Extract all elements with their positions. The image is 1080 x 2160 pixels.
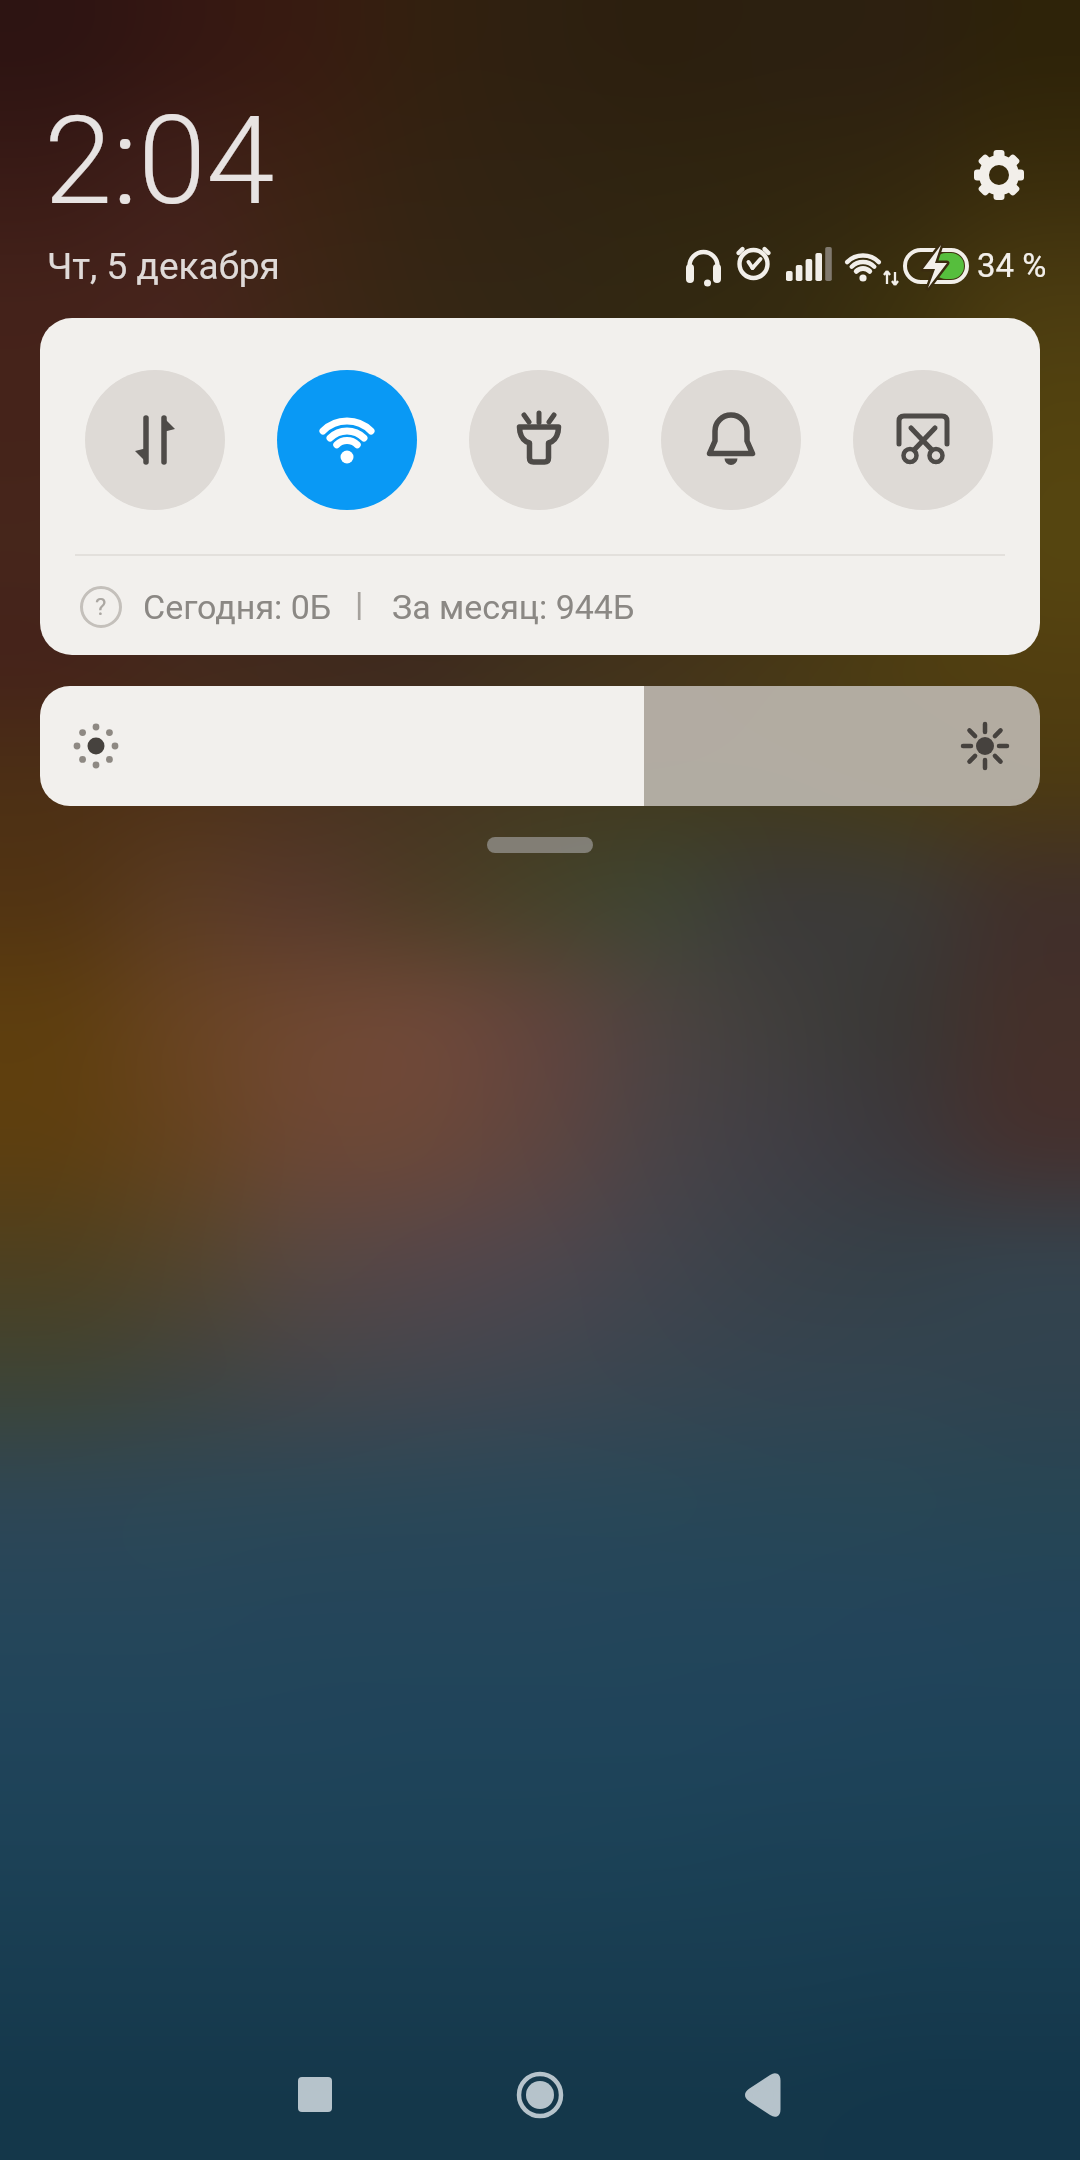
staticText: ?	[95, 593, 107, 621]
staticText: Чт, 5 декабря	[47, 245, 280, 288]
button[interactable]	[969, 145, 1029, 205]
button[interactable]	[720, 2040, 1080, 2160]
button[interactable]	[469, 370, 609, 510]
button[interactable]	[0, 2040, 360, 2160]
button[interactable]	[85, 370, 225, 510]
button[interactable]	[40, 686, 1040, 806]
staticText: Сегодня: 0Б	[143, 587, 332, 627]
button[interactable]	[661, 370, 801, 510]
staticText: 34 %	[977, 246, 1047, 285]
staticText: За месяц: 944Б	[392, 587, 635, 627]
staticText: 2:04	[44, 89, 275, 233]
button[interactable]	[360, 2040, 720, 2160]
button[interactable]	[853, 370, 993, 510]
staticText: |	[355, 584, 364, 624]
button[interactable]	[277, 370, 417, 510]
